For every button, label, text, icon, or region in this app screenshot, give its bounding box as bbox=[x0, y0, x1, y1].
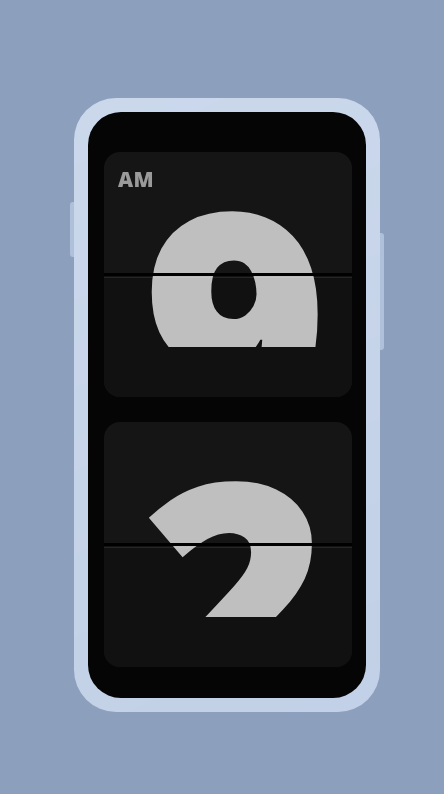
staticText: 27 bbox=[104, 422, 352, 617]
staticText: 9 bbox=[104, 152, 352, 347]
other: Power button bbox=[376, 233, 384, 350]
staticText: AM bbox=[118, 165, 155, 193]
other: Volume button bbox=[70, 202, 78, 257]
button[interactable]: 27 bbox=[104, 422, 352, 667]
button[interactable]: 9 bbox=[104, 152, 352, 397]
